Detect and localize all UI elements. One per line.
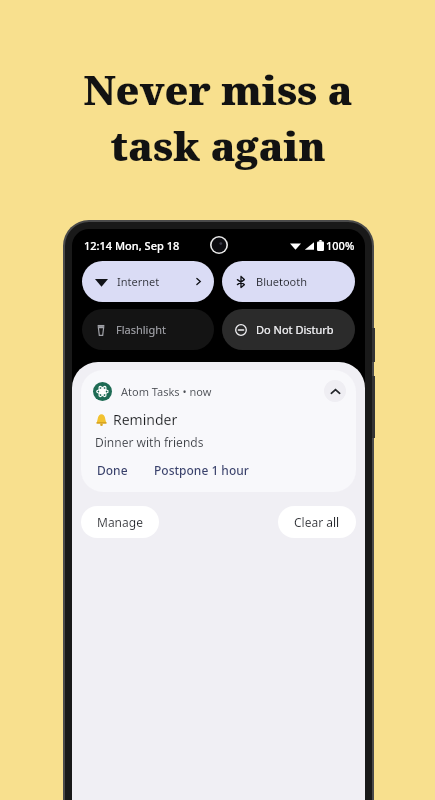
- staticText: 12:14 Mon, Sep 18: [84, 238, 180, 253]
- button[interactable]: Clear all: [278, 506, 356, 538]
- staticText: Postpone 1 hour: [154, 462, 249, 478]
- button[interactable]: Manage: [81, 506, 159, 538]
- button[interactable]: Flashlight: [82, 309, 214, 350]
- staticText: Bluetooth: [256, 274, 308, 289]
- staticText: Manage: [97, 514, 143, 530]
- staticText: Dinner with friends: [95, 434, 204, 450]
- staticText: Atom Tasks • now: [121, 384, 212, 399]
- staticText: Done: [97, 462, 128, 478]
- button[interactable]: Postpone 1 hour: [152, 460, 251, 480]
- staticText: 100%: [326, 238, 355, 253]
- staticText: Reminder: [113, 410, 178, 429]
- button[interactable]: Done: [95, 460, 130, 480]
- staticText: Do Not Disturb: [256, 322, 334, 337]
- button[interactable]: Bluetooth: [222, 261, 355, 302]
- button[interactable]: Atom Tasks • now: [81, 370, 356, 492]
- button[interactable]: Internet: [82, 261, 214, 302]
- button[interactable]: Do Not Disturb: [222, 309, 355, 350]
- staticText: Flashlight: [116, 322, 166, 337]
- staticText: Internet: [117, 274, 160, 289]
- staticText: task again: [110, 118, 326, 172]
- button[interactable]: Collapse: [324, 380, 346, 402]
- staticText: Never miss a: [83, 62, 353, 116]
- staticText: Clear all: [294, 514, 340, 530]
